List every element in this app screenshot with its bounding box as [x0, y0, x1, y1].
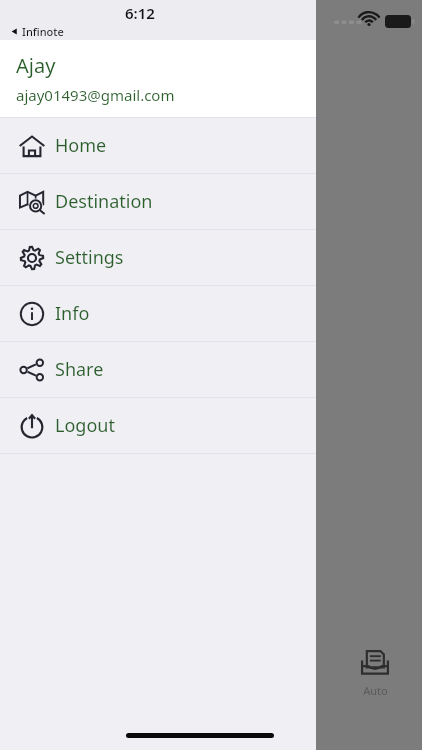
staticText: Info	[55, 301, 90, 326]
staticText: 6:12	[125, 3, 155, 23]
staticText: Settings	[55, 245, 124, 270]
staticText: Share	[55, 357, 104, 382]
staticText: Logout	[55, 413, 115, 438]
button[interactable]: Ajay	[0, 40, 316, 117]
button[interactable]: Home	[0, 118, 316, 173]
staticText: Auto	[363, 683, 388, 698]
button[interactable]: Share	[0, 342, 316, 397]
button[interactable]: Info	[0, 286, 316, 341]
button[interactable]: Destination	[0, 174, 316, 229]
button[interactable]: Settings	[0, 230, 316, 285]
staticText: ajay01493@gmail.com	[16, 85, 175, 105]
staticText: Ajay	[16, 52, 56, 79]
staticText: Destination	[55, 189, 153, 214]
button[interactable]: Auto	[354, 643, 396, 702]
staticText: Home	[55, 133, 107, 158]
staticText: Infinote	[22, 24, 64, 39]
button[interactable]: Logout	[0, 398, 316, 453]
